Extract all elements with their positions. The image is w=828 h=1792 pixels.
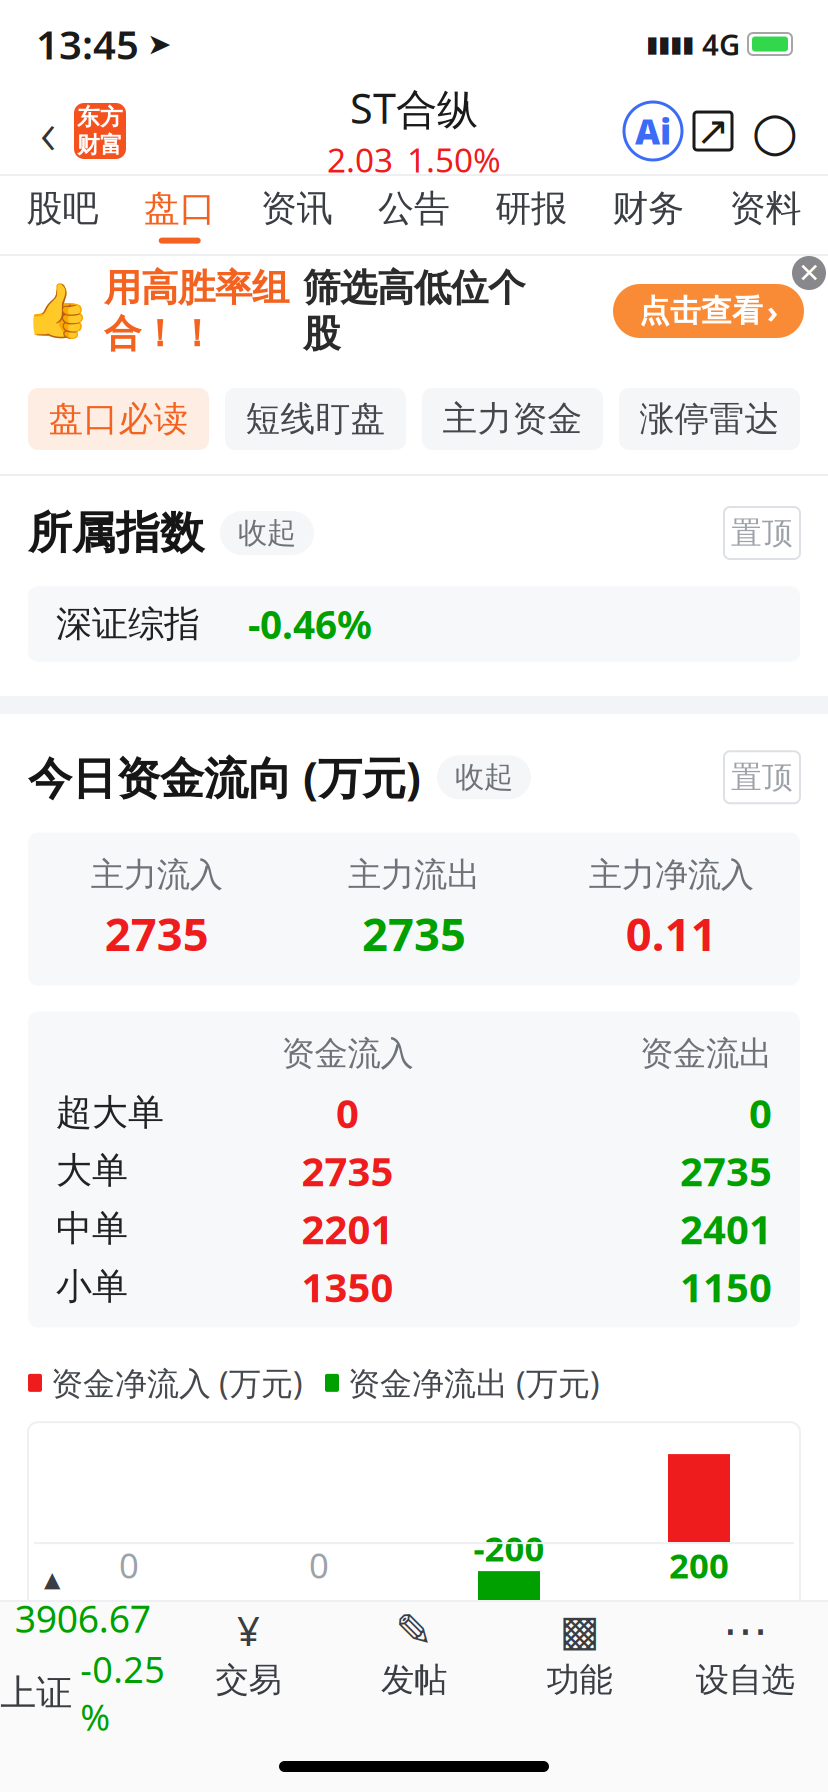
staticText: 2401 — [680, 1202, 772, 1255]
staticText: 0 — [309, 1542, 329, 1588]
button[interactable]: ▩ — [497, 1600, 662, 1708]
button[interactable]: 上证指数 3906.67 — [0, 1600, 166, 1708]
staticText: 超大单 — [56, 1090, 164, 1135]
staticText: 筛选高低位个股 — [303, 265, 525, 357]
staticText: 财务 — [612, 186, 684, 231]
staticText: ▲ — [44, 1567, 60, 1591]
staticText: ✎ — [395, 1605, 433, 1656]
staticText: 2735 — [301, 1144, 393, 1197]
button[interactable]: 资料 — [707, 176, 824, 254]
staticText: 2735 — [362, 903, 466, 964]
staticText: 4G — [702, 24, 740, 63]
staticText: 大单 — [56, 1148, 128, 1193]
staticText: 净小单 — [649, 1678, 748, 1718]
staticText: 用高胜率组合！！ — [104, 265, 289, 357]
staticText: 深证综指 — [56, 602, 200, 646]
staticText: 功能 — [547, 1659, 613, 1700]
staticText: 研报 — [495, 186, 567, 231]
button[interactable]: ✎ — [331, 1600, 497, 1708]
staticText: ST合纵 — [350, 80, 478, 135]
button[interactable]: 主力资金 — [422, 388, 603, 450]
staticText: 上证 — [0, 1671, 72, 1715]
staticText: Ai — [635, 108, 671, 154]
staticText: 涨停雷达 — [639, 398, 779, 440]
staticText: 东方 — [77, 103, 123, 131]
button[interactable]: ¥ — [166, 1600, 331, 1708]
button[interactable]: ⋯ — [662, 1600, 828, 1708]
staticText: 置顶 — [731, 514, 793, 552]
staticText: 2201 — [301, 1202, 393, 1255]
staticText: 小单 — [56, 1264, 128, 1309]
staticText: 所属指数 — [28, 506, 204, 560]
button[interactable]: 研报 — [473, 176, 590, 254]
staticText: ▩ — [560, 1606, 600, 1655]
staticText: 净大单 — [269, 1678, 368, 1718]
button[interactable]: 财务 — [590, 176, 707, 254]
staticText: 资讯 — [261, 186, 333, 231]
staticText: 主力流出 — [348, 854, 480, 895]
staticText: 1350 — [301, 1260, 393, 1313]
staticText: -0.46% — [248, 598, 372, 650]
staticText: 资金流出 — [640, 1033, 772, 1074]
staticText: 发帖 — [381, 1659, 447, 1700]
staticText: 净超大 — [79, 1678, 178, 1718]
button[interactable]: 东方财富 — [74, 103, 126, 159]
staticText: 置顶 — [731, 758, 793, 796]
button[interactable]: 股吧 — [4, 176, 121, 254]
staticText: ¥ — [237, 1604, 260, 1657]
button[interactable]: 置顶 — [724, 751, 800, 803]
staticText: -0.25% — [80, 1645, 165, 1741]
button[interactable]: 短线盯盘 — [225, 388, 406, 450]
staticText: › — [767, 291, 778, 331]
staticText: 净中单 — [459, 1678, 558, 1718]
staticText: ‹ — [40, 90, 56, 172]
staticText: 公告 — [378, 186, 450, 231]
button[interactable]: 收起 — [220, 511, 314, 555]
button[interactable]: 分享 — [682, 100, 744, 162]
staticText: 1150 — [680, 1260, 772, 1313]
staticText: 点击查看 — [639, 292, 763, 330]
button[interactable]: 公告 — [355, 176, 472, 254]
button[interactable]: 盘口必读 — [28, 388, 209, 450]
staticText: 0.11 — [626, 903, 717, 964]
staticText: 3906.67 — [15, 1593, 151, 1643]
staticText: 资料 — [729, 186, 801, 231]
staticText: 主力资金 — [442, 398, 582, 440]
button[interactable]: 👍 — [0, 256, 828, 366]
button[interactable]: 返回 — [22, 95, 74, 167]
staticText: 盘口 — [144, 186, 216, 231]
staticText: 短线盯盘 — [245, 398, 385, 440]
staticText: 0 — [119, 1542, 139, 1588]
staticText: 收起 — [455, 759, 513, 795]
staticText: ✕ — [798, 258, 820, 288]
staticText: 今日资金流向 (万元) — [28, 748, 421, 806]
staticText: 资金净流出 (万元) — [348, 1362, 600, 1404]
button[interactable]: 资讯 — [238, 176, 355, 254]
staticText: 200 — [669, 1542, 729, 1588]
staticText: 股吧 — [27, 186, 99, 231]
staticText: 资金流入 — [281, 1033, 413, 1074]
button[interactable]: 搜索 — [744, 100, 806, 162]
staticText: 2735 — [680, 1144, 772, 1197]
button[interactable]: AI 助手 — [624, 102, 682, 160]
staticText: 交易 — [215, 1659, 281, 1700]
staticText: -200 — [473, 1525, 544, 1571]
button[interactable]: 盘口 — [121, 176, 238, 254]
button[interactable]: 涨停雷达 — [619, 388, 800, 450]
button[interactable]: 置顶 — [724, 507, 800, 559]
staticText: ○ — [751, 101, 798, 161]
staticText: 资金净流入 (万元) — [51, 1362, 303, 1404]
staticText: 财富 — [77, 131, 123, 159]
button[interactable]: 深证综指 — [28, 586, 800, 662]
staticText: 0 — [336, 1086, 359, 1139]
staticText: 盘口必读 — [48, 398, 188, 440]
button[interactable]: 收起 — [437, 755, 531, 799]
staticText: ⋯ — [723, 1605, 768, 1656]
staticText: 13:45 — [36, 17, 139, 70]
button[interactable]: 关闭广告 — [792, 256, 826, 290]
staticText: 👍 — [24, 280, 90, 341]
staticText: 1.50% — [407, 137, 501, 182]
staticText: 主力净流入 — [589, 854, 754, 895]
staticText: 收起 — [238, 515, 296, 551]
staticText: 2735 — [105, 903, 209, 964]
